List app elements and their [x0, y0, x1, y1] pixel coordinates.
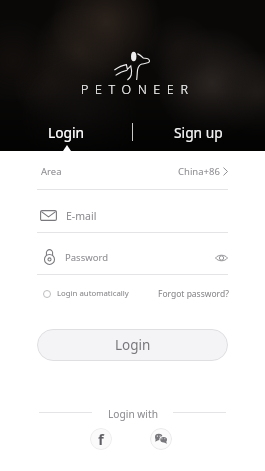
staticText: Login with: [108, 407, 158, 421]
staticText: Login: [115, 336, 151, 354]
staticText: China+86: [178, 165, 220, 178]
button[interactable]: Login with WeChat: [150, 428, 172, 450]
staticText: Login automatically: [57, 288, 129, 299]
button[interactable]: Login with Facebook: [90, 428, 112, 450]
staticText: Area: [41, 165, 62, 178]
button[interactable]: Login: [36, 121, 97, 143]
staticText: Login: [48, 123, 85, 142]
button[interactable]: Show password: [211, 247, 232, 268]
button[interactable]: Forgot password?: [158, 286, 229, 301]
staticText: PETONEER: [81, 81, 195, 98]
staticText: f: [98, 429, 104, 449]
staticText: Forgot password?: [158, 288, 229, 300]
button[interactable]: Login: [37, 329, 228, 361]
staticText: E-mail: [66, 209, 97, 223]
button[interactable]: Login automatically: [41, 286, 129, 301]
staticText: Password: [65, 251, 108, 264]
staticText: Sign up: [174, 123, 223, 142]
button[interactable]: Sign up: [168, 121, 229, 143]
button[interactable]: Area: [37, 155, 228, 188]
